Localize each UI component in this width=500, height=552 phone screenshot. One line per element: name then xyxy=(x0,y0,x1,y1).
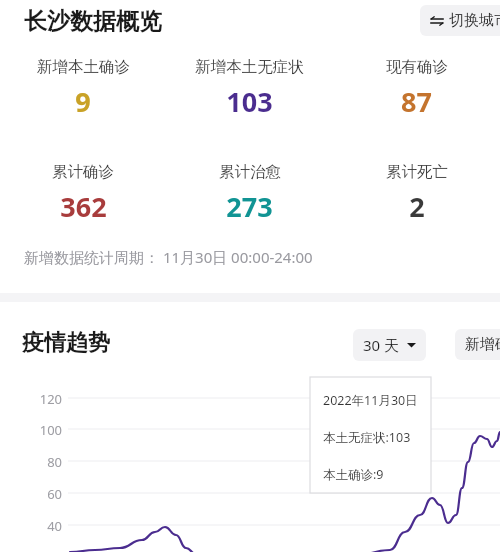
button[interactable]: 累计死亡 xyxy=(333,162,500,225)
button[interactable]: 新增确诊 xyxy=(455,329,500,360)
staticText: 现有确诊 xyxy=(386,57,448,77)
staticText: 新增本土确诊 xyxy=(37,57,130,77)
staticText: 长沙数据概览 xyxy=(24,7,162,36)
staticText: 新增数据统计周期： 11月30日 00:00-24:00 xyxy=(24,247,313,267)
staticText: 9 xyxy=(75,83,91,120)
button[interactable]: 新增本土确诊 xyxy=(0,57,166,120)
staticText: 本土确诊:9 xyxy=(323,466,384,483)
staticText: 103 xyxy=(226,83,273,120)
staticText: 30 天 xyxy=(363,335,400,355)
staticText: 100 xyxy=(18,421,62,439)
button[interactable]: Switch city xyxy=(420,5,500,36)
staticText: 累计治愈 xyxy=(219,162,281,182)
staticText: 87 xyxy=(401,83,432,120)
staticText: 120 xyxy=(18,390,62,408)
button[interactable]: 现有确诊 xyxy=(333,57,500,120)
staticText: 新增本土无症状 xyxy=(195,57,304,77)
button[interactable]: 新增本土无症状 xyxy=(166,57,333,120)
staticText: 40 xyxy=(18,517,62,535)
staticText: 累计确诊 xyxy=(52,162,114,182)
other: Switch city xyxy=(430,14,444,28)
staticText: 本土无症状:103 xyxy=(323,429,411,446)
button[interactable]: 累计确诊 xyxy=(0,162,166,225)
staticText: 新增确诊 xyxy=(465,335,500,354)
staticText: 362 xyxy=(60,188,107,225)
staticText: 疫情趋势 xyxy=(22,329,110,357)
button[interactable]: 2022年11月30日 xyxy=(311,378,430,492)
staticText: 60 xyxy=(18,485,62,503)
staticText: 切换城市 xyxy=(449,11,500,30)
staticText: 累计死亡 xyxy=(386,162,448,182)
staticText: 273 xyxy=(226,188,273,225)
staticText: 2022年11月30日 xyxy=(323,392,418,409)
button[interactable]: 30 天 xyxy=(353,329,426,361)
staticText: 80 xyxy=(18,453,62,471)
button[interactable]: 累计治愈 xyxy=(166,162,333,225)
staticText: 2 xyxy=(409,188,425,225)
